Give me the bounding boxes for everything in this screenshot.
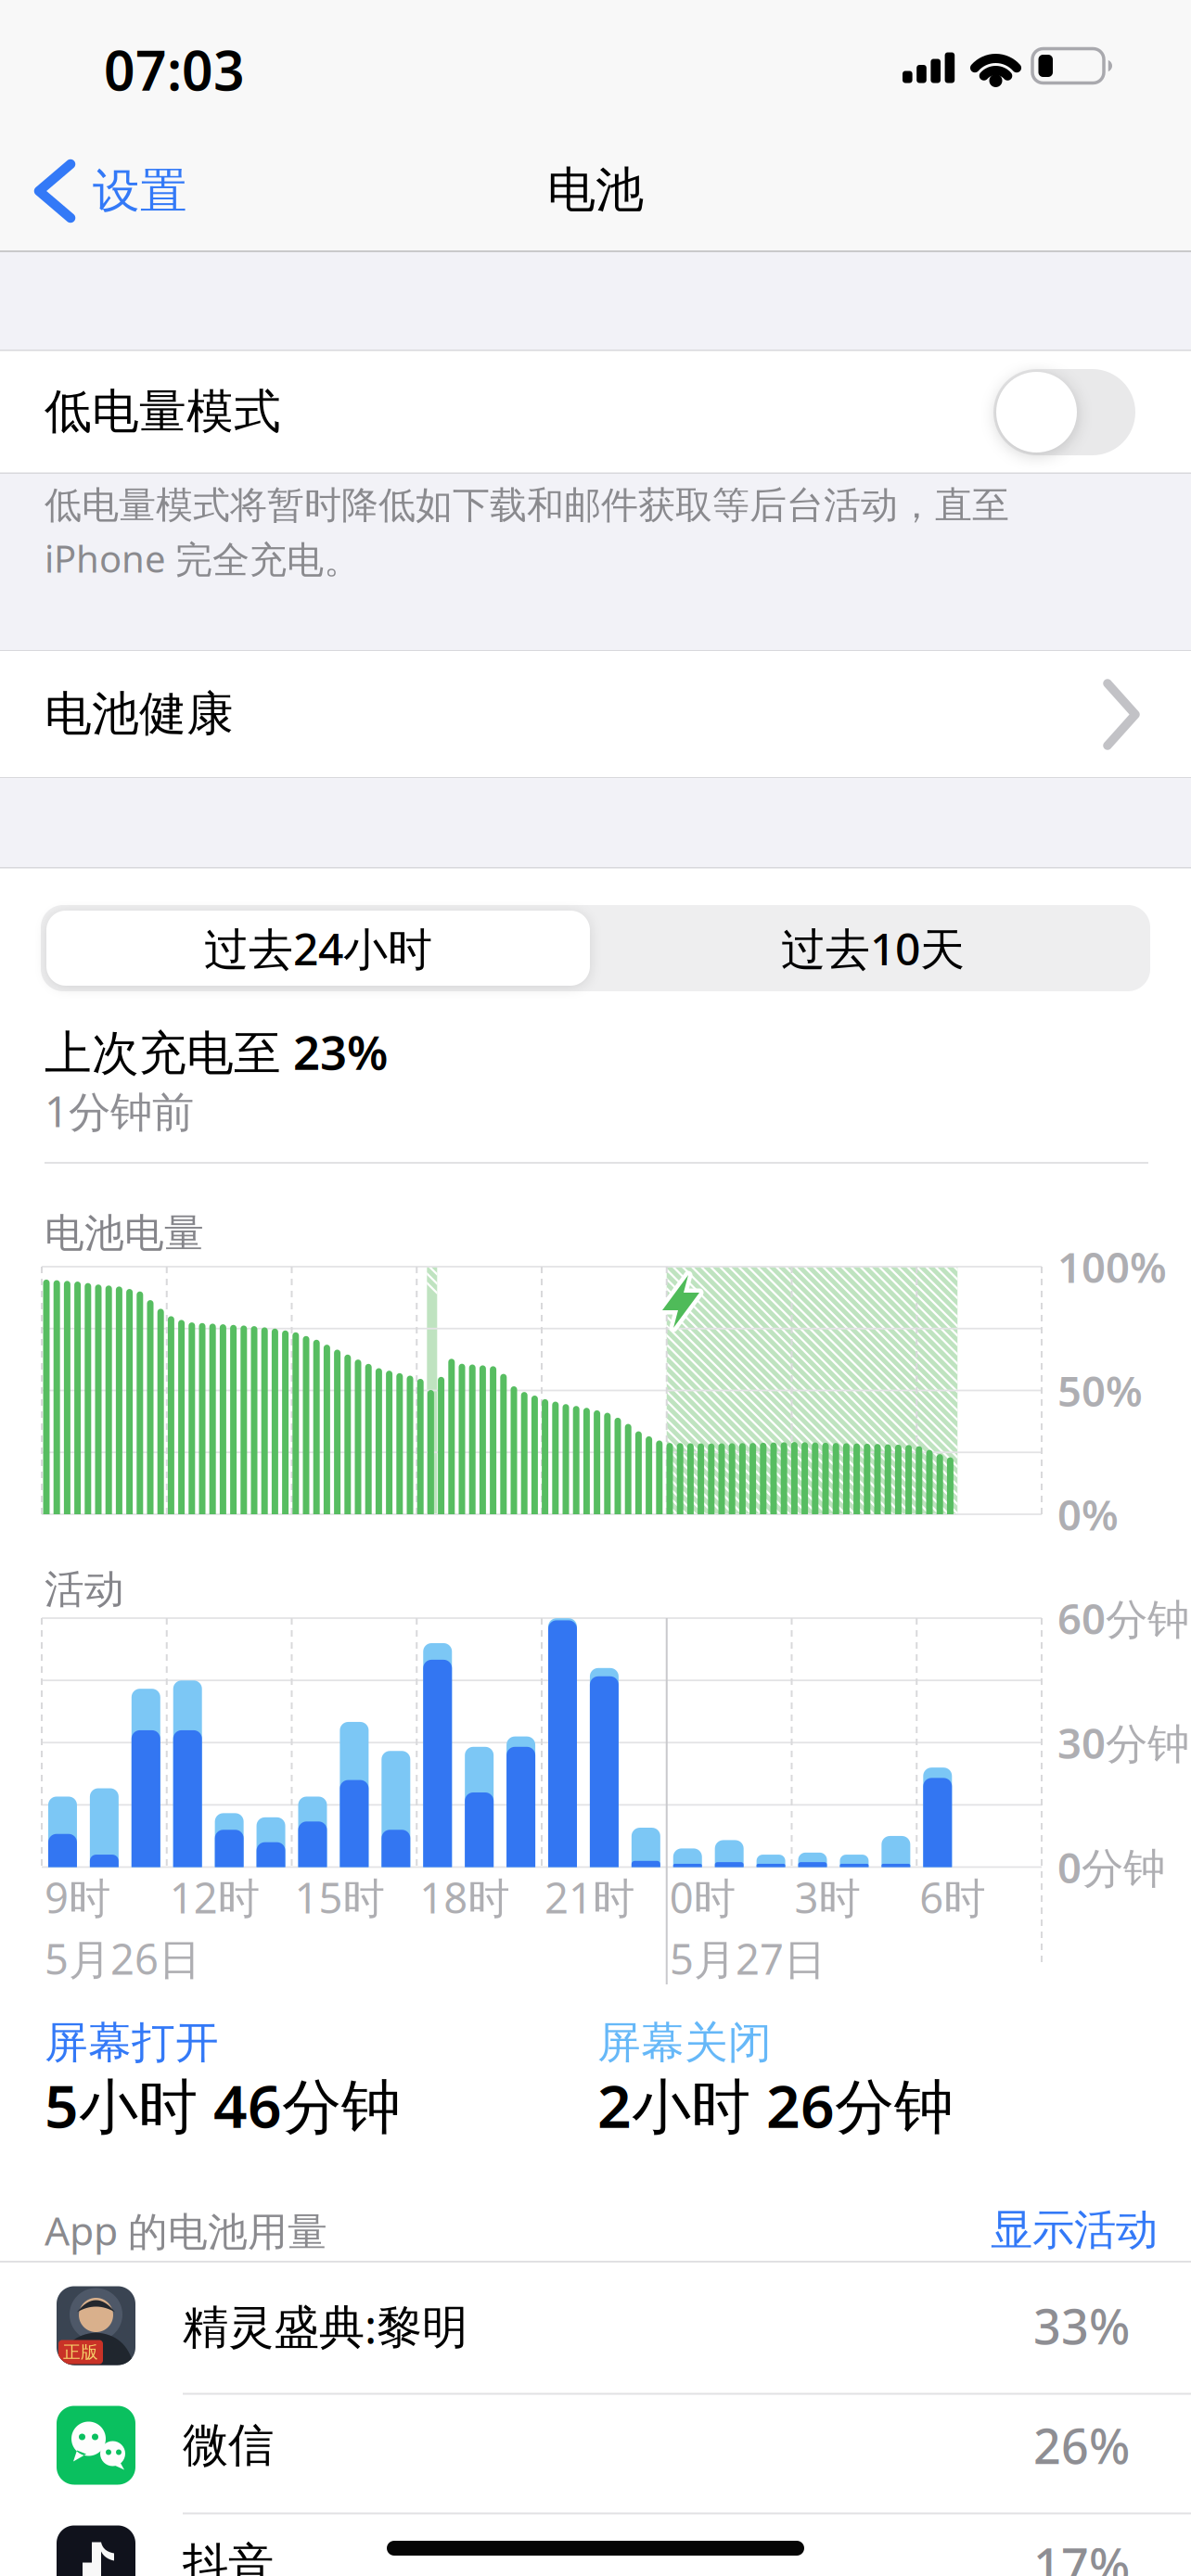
staticText: 6时 bbox=[919, 1869, 985, 1925]
staticText: 1分钟前 bbox=[45, 1083, 194, 1139]
staticText: 5月26日 bbox=[45, 1931, 200, 1986]
staticText: 26% bbox=[1033, 2413, 1130, 2477]
staticText: 50% bbox=[1057, 1363, 1143, 1418]
staticText: 过去10天 bbox=[781, 919, 965, 978]
staticText: 显示活动 bbox=[991, 2204, 1158, 2256]
button[interactable]: 显示活动 bbox=[991, 2204, 1158, 2256]
staticText: 21时 bbox=[544, 1869, 634, 1925]
staticText: 0% bbox=[1057, 1486, 1119, 1542]
staticText: 抖音 bbox=[183, 2537, 274, 2576]
staticText: iPhone 完全充电。 bbox=[45, 533, 361, 583]
staticText: 低电量模式 bbox=[45, 383, 281, 441]
button[interactable]: 过去10天 bbox=[601, 911, 1145, 986]
button[interactable]: 设置 bbox=[19, 156, 315, 226]
staticText: 9时 bbox=[45, 1869, 110, 1925]
button[interactable]: 电池健康 bbox=[0, 651, 1191, 777]
staticText: 上次充电至 23% bbox=[45, 1020, 388, 1083]
staticText: 3时 bbox=[794, 1869, 860, 1925]
staticText: 17% bbox=[1033, 2533, 1130, 2576]
staticText: 60分钟 bbox=[1057, 1590, 1189, 1646]
staticText: 活动 bbox=[45, 1565, 124, 1614]
staticText: 微信 bbox=[183, 2417, 274, 2473]
staticText: 33% bbox=[1033, 2294, 1130, 2358]
staticText: 正版 bbox=[63, 2341, 98, 2363]
staticText: 30分钟 bbox=[1057, 1715, 1189, 1770]
button[interactable]: 过去24小时 bbox=[46, 911, 590, 986]
staticText: 12时 bbox=[170, 1869, 260, 1925]
staticText: 电池电量 bbox=[45, 1209, 204, 1258]
staticText: 电池 bbox=[547, 161, 644, 220]
staticText: 0时 bbox=[670, 1869, 735, 1925]
staticText: 2小时 26分钟 bbox=[597, 2066, 954, 2144]
staticText: 屏幕关闭 bbox=[597, 2016, 772, 2069]
staticText: 低电量模式将暂时降低如下载和邮件获取等后台活动，直至 bbox=[45, 483, 1009, 528]
staticText: 精灵盛典:黎明 bbox=[183, 2295, 467, 2356]
button[interactable]: 微信 bbox=[0, 2385, 1191, 2505]
staticText: 07:03 bbox=[104, 33, 245, 106]
staticText: 设置 bbox=[93, 162, 187, 220]
button[interactable] bbox=[993, 369, 1135, 455]
staticText: 18时 bbox=[419, 1869, 509, 1925]
button[interactable]: 抖音 bbox=[0, 2505, 1191, 2576]
staticText: 5月27日 bbox=[670, 1931, 826, 1986]
staticText: 0分钟 bbox=[1057, 1839, 1165, 1895]
staticText: 过去24小时 bbox=[204, 919, 432, 978]
staticText: 15时 bbox=[295, 1869, 384, 1925]
staticText: 屏幕打开 bbox=[45, 2016, 219, 2069]
staticText: App 的电池用量 bbox=[45, 2204, 327, 2257]
staticText: 100% bbox=[1057, 1239, 1167, 1295]
button[interactable]: 正版 bbox=[0, 2266, 1191, 2385]
staticText: 电池健康 bbox=[45, 685, 234, 743]
staticText: 5小时 46分钟 bbox=[45, 2066, 401, 2144]
